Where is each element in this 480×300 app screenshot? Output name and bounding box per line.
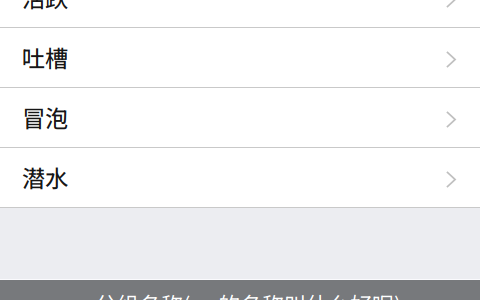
button[interactable]: 吐槽 xyxy=(0,28,480,88)
button[interactable]: 潜水 xyxy=(0,148,480,208)
button[interactable]: 活跃 xyxy=(0,0,480,28)
staticText: 潜水 xyxy=(22,165,68,192)
staticText: 吐槽 xyxy=(22,45,68,72)
staticText: 活跃 xyxy=(22,0,68,12)
staticText: 冒泡 xyxy=(22,105,68,132)
staticText: 分组名称(qq的名称叫什么好呢) xyxy=(95,292,401,300)
button[interactable]: 冒泡 xyxy=(0,88,480,148)
